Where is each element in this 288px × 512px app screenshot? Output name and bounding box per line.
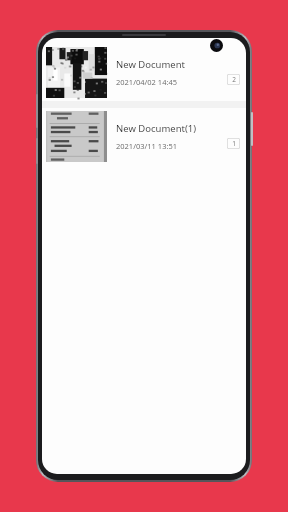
- button[interactable]: Page count 1: [227, 138, 240, 149]
- button[interactable]: Page count 2: [227, 74, 240, 85]
- button[interactable]: New Document: [42, 44, 246, 101]
- staticText: New Document: [116, 58, 185, 71]
- staticText: 2: [232, 75, 236, 84]
- button[interactable]: New Document(1): [42, 108, 246, 165]
- staticText: 2021/04/02 14:45: [116, 77, 178, 87]
- staticText: New Document(1): [116, 122, 197, 135]
- staticText: 2021/03/11 13:51: [116, 141, 178, 151]
- staticText: 1: [232, 139, 236, 148]
